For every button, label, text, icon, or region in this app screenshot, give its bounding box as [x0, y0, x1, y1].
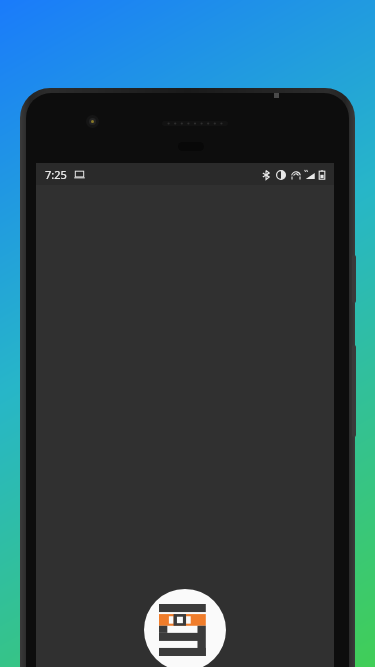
button[interactable]: App logo	[144, 589, 226, 667]
staticText: 7:25	[45, 167, 67, 182]
